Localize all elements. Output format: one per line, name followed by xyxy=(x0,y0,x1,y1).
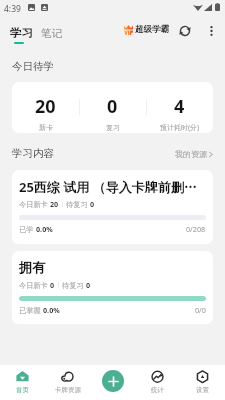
button[interactable]: 我的资源 xyxy=(175,149,213,159)
staticText: 0 xyxy=(90,199,95,209)
staticText: 我的资源 xyxy=(175,149,207,159)
staticText: 新卡 xyxy=(39,123,53,132)
button[interactable]: 超级学霸 xyxy=(124,24,169,35)
staticText: 今日待学 xyxy=(12,60,54,73)
staticText: 4:39 xyxy=(4,3,21,15)
staticText: 首页 xyxy=(16,386,29,394)
button[interactable]: Sync xyxy=(175,21,195,41)
staticText: 学习 xyxy=(10,26,33,40)
button[interactable]: 拥有 xyxy=(12,251,213,324)
staticText: 学习内容 xyxy=(12,147,54,160)
button[interactable]: 首页 xyxy=(0,365,45,400)
staticText: 今日新卡 xyxy=(19,199,50,209)
button[interactable]: 卡牌资源 xyxy=(45,365,90,400)
button[interactable]: 25西综 试用 （导入卡牌前删除... xyxy=(12,170,213,244)
staticText: 复习 xyxy=(106,123,120,132)
staticText: 0 xyxy=(50,280,55,290)
button[interactable]: 设置 xyxy=(180,365,225,400)
button[interactable]: More options xyxy=(201,21,221,41)
staticText: 0/0 xyxy=(195,305,206,315)
staticText: 已学 xyxy=(19,224,36,234)
staticText: 已掌握 xyxy=(19,305,43,315)
staticText: 0.0% xyxy=(43,305,60,315)
staticText: 0/208 xyxy=(186,224,206,234)
staticText: 统计 xyxy=(151,386,164,394)
staticText: 20 xyxy=(50,199,59,209)
button[interactable]: Add xyxy=(102,370,124,392)
staticText: 卡牌资源 xyxy=(55,386,81,394)
staticText: 设置 xyxy=(196,386,209,394)
staticText: 20 xyxy=(35,94,56,119)
staticText: 4 xyxy=(174,94,185,119)
button[interactable]: 统计 xyxy=(135,365,180,400)
staticText: 0 xyxy=(107,94,118,119)
staticText: 笔记 xyxy=(41,27,62,40)
button[interactable]: 笔记 xyxy=(41,27,62,40)
staticText: 拥有 xyxy=(19,259,45,275)
staticText: 0.0% xyxy=(36,224,53,234)
staticText: 0 xyxy=(86,280,91,290)
staticText: 预计耗时(分) xyxy=(160,123,200,133)
staticText: 待复习 xyxy=(66,199,90,209)
button[interactable]: 20 xyxy=(12,82,213,133)
staticText: 今日新卡 xyxy=(19,280,50,290)
button[interactable]: 学习 xyxy=(10,26,33,40)
staticText: 超级学霸 xyxy=(135,24,169,35)
staticText: 25西综 试用 （导入卡牌前删除... xyxy=(19,178,207,196)
staticText: 待复习 xyxy=(62,280,86,290)
